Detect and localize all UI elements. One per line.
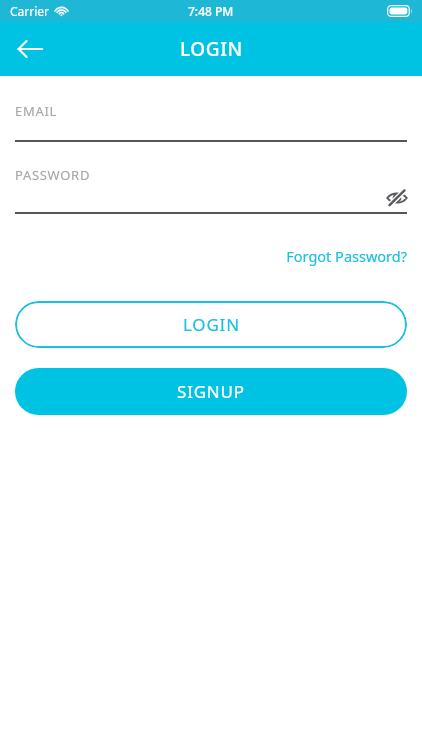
staticText: PASSWORD [15, 166, 91, 184]
staticText: LOGIN [180, 36, 243, 62]
staticText: SIGNUP [177, 380, 245, 403]
button[interactable]: LOGIN [15, 301, 407, 348]
staticText: Forgot Password? [286, 246, 407, 266]
button[interactable]: Forgot Password? [284, 244, 409, 268]
staticText: 7:48 PM [188, 3, 234, 19]
button[interactable]: Back [8, 27, 52, 71]
staticText: LOGIN [183, 313, 240, 336]
staticText: Carrier [10, 3, 50, 19]
button[interactable]: SIGNUP [15, 368, 407, 415]
button[interactable]: Show password [383, 184, 411, 212]
staticText: EMAIL [15, 102, 58, 120]
